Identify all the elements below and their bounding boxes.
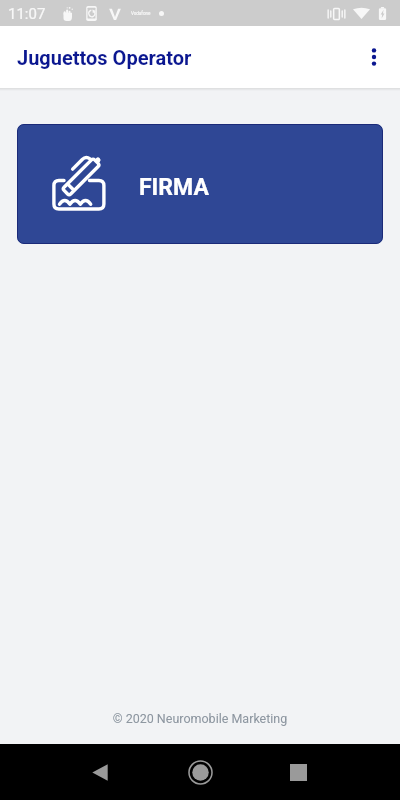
staticText: 11:07 xyxy=(8,5,46,23)
button[interactable]: Home xyxy=(176,748,224,796)
staticText: © 2020 Neuromobile Marketing xyxy=(0,711,400,726)
staticText: Juguettos Operator xyxy=(17,46,192,69)
staticText: Vodafone xyxy=(131,11,151,16)
button[interactable]: More options xyxy=(350,33,398,81)
staticText: FIRMA xyxy=(139,174,209,201)
button[interactable]: FIRMA xyxy=(17,124,383,244)
button[interactable]: Back xyxy=(76,748,124,796)
button[interactable]: Recent apps xyxy=(274,748,322,796)
